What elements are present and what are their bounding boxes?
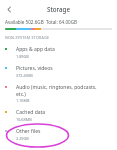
staticText: Other files [16, 128, 41, 135]
button[interactable]: Apps & app data [0, 44, 117, 61]
staticText: NON-SYSTEM STORAGE [5, 35, 50, 40]
staticText: 1.89GB [16, 54, 29, 59]
staticText: Pictures, videos [16, 65, 53, 72]
button[interactable]: Cached data [0, 107, 117, 124]
button[interactable]: Pictures, videos [0, 63, 117, 80]
staticText: Storage [47, 5, 70, 13]
staticText: 16.68MB [16, 117, 32, 122]
staticText: 2.29GB [16, 136, 29, 141]
staticText: 372.40KB [16, 73, 33, 78]
staticText: Audio (music, ringtones, podcasts, etc.) [16, 84, 97, 97]
staticText: Cached data [16, 109, 46, 116]
button[interactable]: Other files [0, 126, 117, 143]
staticText: 1.16MB [16, 98, 30, 103]
staticText: Apps & app data [16, 46, 55, 53]
staticText: Available 502.6GB Total: 64.00GB [5, 19, 77, 25]
button[interactable]: Back [3, 3, 15, 15]
button[interactable]: Audio (music, ringtones, podcasts, etc.) [0, 82, 117, 105]
